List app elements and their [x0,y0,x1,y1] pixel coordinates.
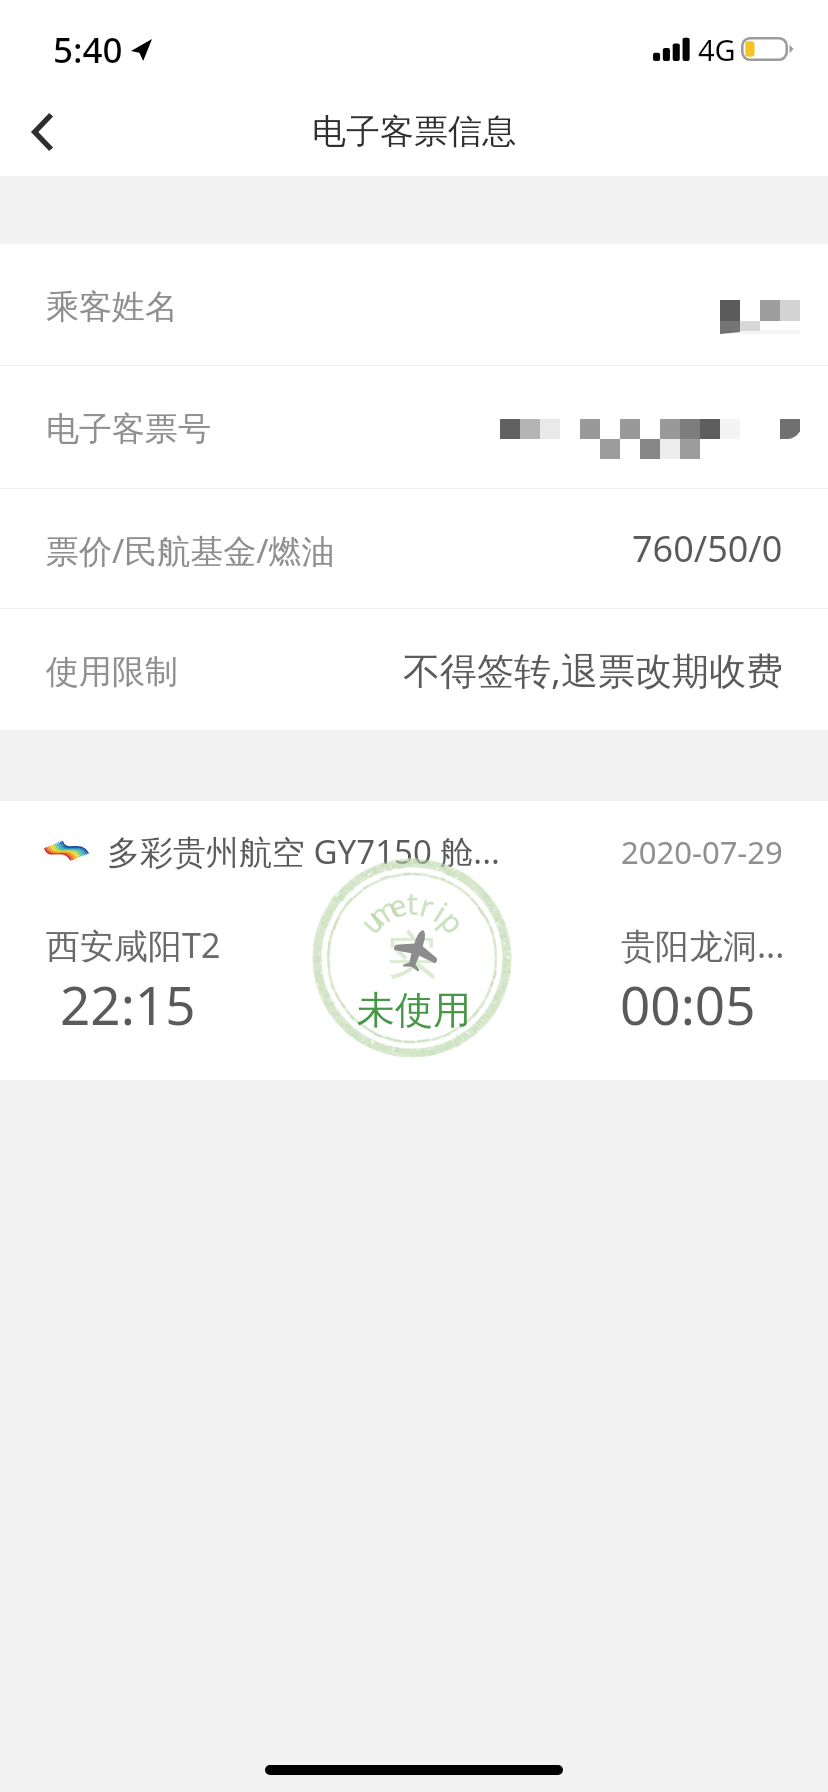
button[interactable]: 电子客票号 [0,366,828,488]
staticText: 票价/民航基金/燃油 [46,528,335,573]
staticText: 760/50/0 [632,524,783,573]
staticText: 不得签转,退票改期收费 [403,644,783,695]
button[interactable]: 票价/民航基金/燃油 [0,489,828,608]
staticText: 4G [698,30,736,69]
staticText: 22:15 [60,968,196,1040]
staticText: e [384,883,411,927]
staticText: 电子客票信息 [312,110,516,153]
staticText: 多彩贵州航空 GY7150 舱... [107,829,500,874]
staticText: i [427,892,455,931]
staticText: 使用限制 [46,651,178,693]
button[interactable]: Back [0,89,86,175]
staticText: t [407,883,418,924]
staticText: p [431,901,474,943]
staticText: 电子客票号 [46,408,211,450]
staticText: 乘客姓名 [46,286,178,328]
button[interactable]: 使用限制 [0,609,828,730]
staticText: 00:05 [620,968,756,1040]
staticText: 2020-07-29 [621,831,783,873]
staticText: 贵阳龙洞... [621,922,785,968]
staticText: 实 [387,924,437,987]
button[interactable]: 多彩贵州航空 GY7150 舱... [0,801,828,1080]
staticText: 未使用 [357,986,471,1034]
staticText: 西安咸阳T2 [46,922,221,968]
staticText: m [360,886,407,936]
staticText: 5:40 [53,26,123,74]
staticText: u [350,900,393,942]
button[interactable]: 乘客姓名 [0,244,828,365]
staticText: r [416,884,439,927]
